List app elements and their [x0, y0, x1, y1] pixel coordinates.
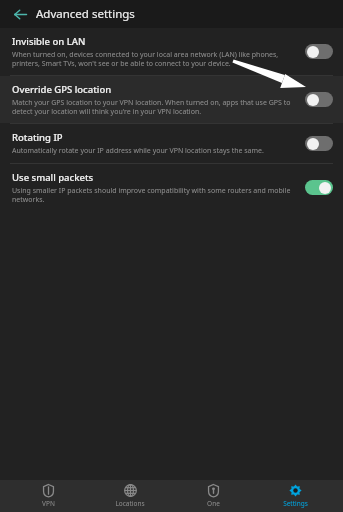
staticText: Use small packets [12, 171, 94, 184]
button[interactable]: Back [8, 2, 32, 26]
staticText: Using smaller IP packets should improve … [12, 186, 295, 204]
staticText: Locations [115, 499, 145, 508]
staticText: Settings [283, 499, 308, 508]
staticText: Advanced settings [36, 6, 135, 22]
button[interactable]: Off [305, 92, 333, 107]
staticText: Rotating IP [12, 131, 63, 144]
staticText: VPN [42, 499, 55, 508]
button[interactable]: Use small packets [0, 164, 343, 211]
staticText: Invisible on LAN [12, 35, 86, 48]
button[interactable]: One [178, 480, 248, 512]
button[interactable]: Off [305, 44, 333, 59]
button[interactable]: Override GPS location [0, 76, 343, 123]
button[interactable]: On [305, 180, 333, 195]
staticText: Match your GPS location to your VPN loca… [12, 98, 295, 116]
staticText: One [207, 499, 220, 508]
button[interactable]: VPN [13, 480, 83, 512]
button[interactable]: Invisible on LAN [0, 28, 343, 75]
staticText: When turned on, devices connected to you… [12, 50, 295, 68]
staticText: Automatically rotate your IP address whi… [12, 146, 264, 156]
button[interactable]: Off [305, 136, 333, 151]
button[interactable]: Rotating IP [0, 124, 343, 163]
staticText: Override GPS location [12, 83, 112, 96]
button[interactable]: Locations [95, 480, 165, 512]
button[interactable]: Settings [260, 480, 330, 512]
